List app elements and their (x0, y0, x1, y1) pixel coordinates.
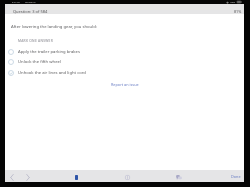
staticText: After lowering the landing gear, you sho… (11, 24, 97, 30)
staticText: Done (231, 174, 241, 179)
button[interactable]: Next question (22, 171, 34, 183)
staticText: Report an issue (111, 82, 139, 87)
staticText: Thu Sep 18 (25, 1, 36, 4)
button[interactable]: Bookmark (70, 171, 82, 183)
staticText: Unlock the fifth wheel (18, 59, 61, 65)
button[interactable]: Done (228, 171, 244, 182)
button[interactable]: Report an issue (106, 80, 144, 89)
staticText: 9:41 AM (12, 1, 20, 4)
staticText: Unhook the air lines and light cord (18, 70, 86, 76)
button[interactable]: Unlock the fifth wheel (5, 56, 244, 67)
staticText: Question: 3 of 584 (13, 9, 48, 14)
staticText: 81% (234, 9, 242, 14)
staticText: Apply the trailer parking brakes (18, 49, 80, 55)
button[interactable]: Previous question (6, 171, 18, 183)
button[interactable]: Comments (173, 171, 185, 183)
button[interactable]: Unhook the air lines and light cord (5, 67, 244, 78)
button[interactable]: Statistics (121, 171, 133, 183)
staticText: MARK ONE ANSWER (18, 38, 53, 42)
button[interactable]: Apply the trailer parking brakes (5, 46, 244, 57)
staticText: 100% (230, 1, 236, 4)
